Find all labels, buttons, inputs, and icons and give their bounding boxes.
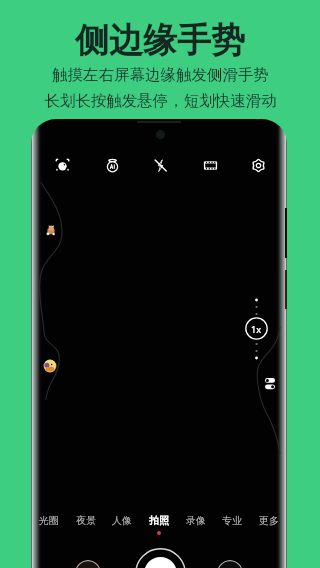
- button[interactable]: 光圈: [35, 512, 63, 537]
- staticText: 更多: [259, 514, 279, 527]
- staticText: 拍照: [149, 514, 169, 527]
- staticText: 触摸左右屏幕边缘触发侧滑手势: [52, 65, 269, 85]
- button[interactable]: Switch camera: [217, 560, 243, 568]
- button[interactable]: Settings toggles: [265, 378, 275, 389]
- button[interactable]: Gallery: [75, 560, 101, 568]
- button[interactable]: Flash off: [149, 154, 171, 176]
- button[interactable]: 夜景: [72, 512, 100, 537]
- button[interactable]: 录像: [182, 512, 210, 537]
- button[interactable]: Shutter: [135, 548, 186, 568]
- button[interactable]: 专业: [218, 512, 246, 537]
- staticText: 录像: [186, 514, 206, 527]
- staticText: 长划长按触发悬停，短划快速滑动: [44, 91, 277, 111]
- button[interactable]: Video frame: [199, 154, 221, 176]
- staticText: 侧边缘手势: [75, 19, 245, 62]
- staticText: 夜景: [76, 514, 96, 527]
- staticText: 1x: [251, 323, 262, 335]
- button[interactable]: AI mode: [101, 154, 123, 176]
- staticText: 光圈: [39, 514, 59, 527]
- staticText: 人像: [112, 514, 132, 527]
- staticText: 专业: [222, 514, 242, 527]
- button[interactable]: Scene detection: [51, 154, 73, 176]
- button[interactable]: 拍照: [145, 512, 173, 537]
- button[interactable]: Settings: [247, 154, 269, 176]
- button[interactable]: 人像: [108, 512, 136, 537]
- button[interactable]: Zoom 1x: [245, 317, 268, 340]
- button[interactable]: 更多: [255, 512, 283, 537]
